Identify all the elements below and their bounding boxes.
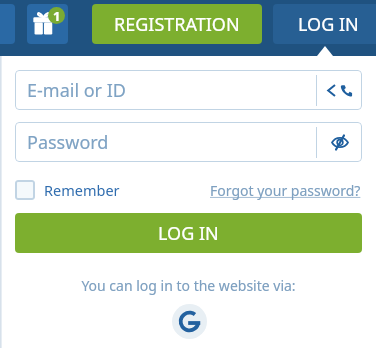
button[interactable]: E-mail or ID [15, 70, 362, 110]
staticText: Password [27, 130, 109, 155]
button[interactable]: Remember [15, 180, 120, 200]
staticText: LOG IN [298, 12, 359, 37]
button[interactable]: Sign in with Google [172, 304, 207, 339]
staticText: REGISTRATION [114, 12, 240, 37]
button[interactable]: Menu [0, 4, 15, 44]
button[interactable]: Forgot your password? [210, 181, 361, 200]
staticText: 1 [53, 7, 61, 24]
button[interactable]: Phone login [316, 70, 362, 110]
staticText: E-mail or ID [27, 78, 126, 103]
button[interactable]: LOG IN [15, 213, 362, 253]
staticText: You can log in to the website via: [81, 276, 296, 295]
staticText: Forgot your password? [210, 181, 361, 200]
staticText: LOG IN [158, 221, 219, 246]
button[interactable]: Show password [316, 122, 362, 162]
button[interactable]: Gifts [27, 4, 68, 44]
button[interactable]: REGISTRATION [92, 4, 262, 44]
staticText: Remember [44, 180, 120, 200]
button[interactable]: Password [15, 122, 362, 162]
button[interactable]: LOG IN [273, 4, 376, 44]
